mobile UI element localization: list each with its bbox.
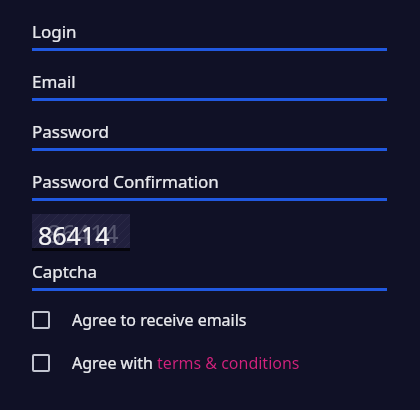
staticText: Agree with terms & conditions <box>72 352 300 374</box>
staticText: Captcha <box>32 260 98 283</box>
staticText: Login <box>32 20 77 43</box>
staticText: 86414 <box>47 216 119 250</box>
staticText: Email <box>32 70 76 93</box>
staticText: Password Confirmation <box>32 170 219 193</box>
staticText: Agree to receive emails <box>72 309 247 331</box>
button[interactable]: Agree with terms & conditions <box>32 352 387 374</box>
staticText: Password <box>32 120 109 143</box>
button[interactable]: Agree to receive emails <box>32 309 387 331</box>
staticText: 86414 <box>38 218 110 251</box>
